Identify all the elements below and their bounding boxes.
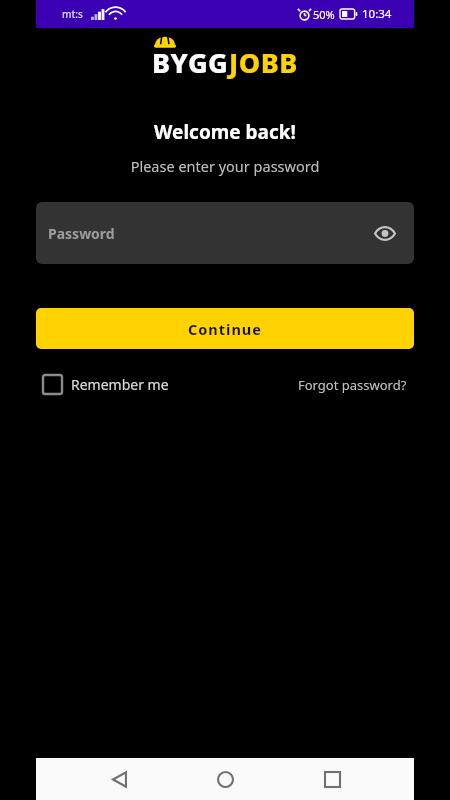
staticText: JOBB xyxy=(229,44,298,81)
staticText: Remember me xyxy=(71,375,169,394)
staticText: Password xyxy=(48,224,115,243)
button[interactable]: Recent apps xyxy=(308,758,356,800)
staticText: 50% xyxy=(313,7,335,22)
staticText: Forgot password? xyxy=(298,376,407,394)
staticText: Please enter your password xyxy=(36,156,414,176)
button[interactable]: Forgot password? xyxy=(298,376,407,394)
staticText: BYGG xyxy=(152,44,229,81)
button[interactable]: Password xyxy=(36,202,414,264)
button[interactable]: Back xyxy=(95,758,143,800)
button[interactable]: Remember me xyxy=(43,375,169,394)
button[interactable]: Show password xyxy=(368,216,402,250)
staticText: 10:34 xyxy=(362,6,392,22)
staticText: Welcome back! xyxy=(36,119,414,145)
staticText: mt:s xyxy=(62,7,83,21)
button[interactable]: Continue xyxy=(36,308,414,349)
button[interactable]: Home xyxy=(201,758,249,800)
staticText: Continue xyxy=(188,319,262,339)
